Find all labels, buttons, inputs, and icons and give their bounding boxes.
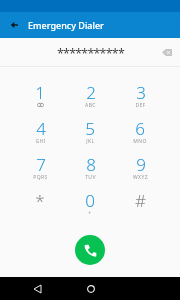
- button[interactable]: #: [115, 189, 165, 225]
- staticText: 9: [136, 153, 146, 176]
- button[interactable]: 2: [65, 81, 115, 117]
- staticText: 7: [36, 153, 46, 176]
- button[interactable]: Home: [83, 281, 99, 297]
- button[interactable]: 9: [115, 153, 165, 189]
- button[interactable]: 4: [15, 117, 65, 153]
- button[interactable]: 0: [65, 189, 115, 225]
- button[interactable]: Back: [29, 281, 45, 297]
- staticText: DEF: [135, 102, 146, 109]
- staticText: 0: [85, 189, 95, 212]
- staticText: TUV: [85, 174, 96, 181]
- button[interactable]: 1: [15, 81, 65, 117]
- staticText: 3: [136, 81, 146, 104]
- button[interactable]: Back: [1, 12, 27, 38]
- staticText: ABC: [85, 102, 96, 109]
- staticText: 1: [35, 81, 45, 104]
- button[interactable]: 6: [115, 117, 165, 153]
- staticText: Emergency Dialer: [28, 19, 104, 31]
- button[interactable]: Backspace: [158, 43, 176, 61]
- staticText: 8: [86, 153, 96, 176]
- button[interactable]: *: [15, 189, 65, 225]
- staticText: #: [135, 189, 146, 212]
- staticText: JKL: [86, 138, 95, 145]
- button[interactable]: 5: [65, 117, 115, 153]
- staticText: GHI: [35, 138, 46, 145]
- staticText: PQRS: [33, 174, 48, 181]
- staticText: +: [88, 210, 92, 217]
- staticText: *: [35, 189, 45, 212]
- staticText: MNO: [133, 138, 147, 145]
- button[interactable]: 7: [15, 153, 65, 189]
- staticText: 5: [85, 117, 95, 140]
- button[interactable]: 8: [65, 153, 115, 189]
- staticText: 2: [86, 81, 96, 104]
- staticText: 4: [36, 117, 46, 140]
- staticText: WXYZ: [133, 174, 148, 181]
- staticText: 6: [135, 117, 145, 140]
- button[interactable]: Call: [75, 235, 105, 265]
- button[interactable]: 3: [115, 81, 165, 117]
- staticText: ***********: [57, 45, 124, 62]
